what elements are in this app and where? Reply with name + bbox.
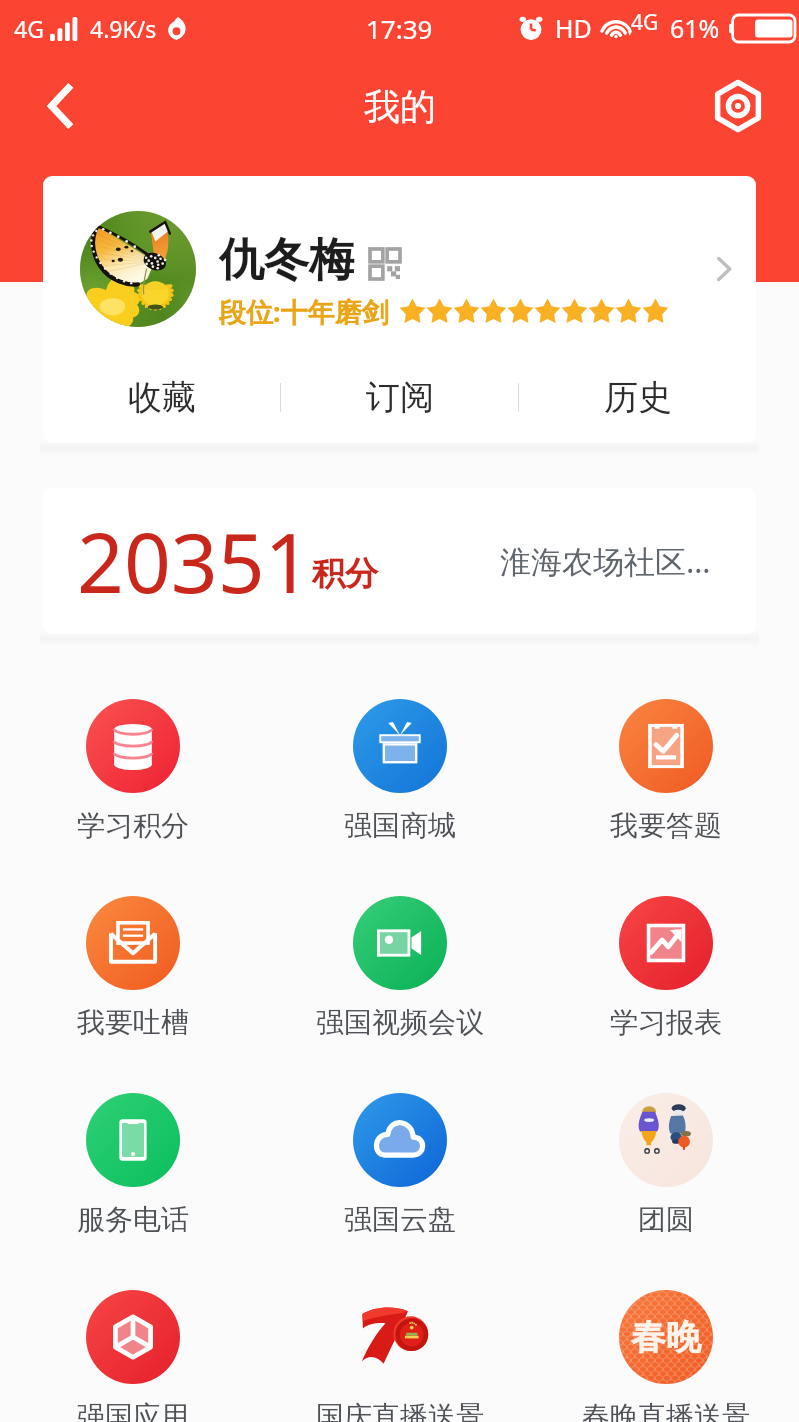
button[interactable]: 仇冬梅 [43, 176, 756, 362]
staticText: 学习积分 [77, 808, 189, 843]
staticText: 我的 [364, 84, 436, 129]
staticText: 我要吐槽 [77, 1005, 189, 1040]
staticText: 61% [670, 11, 720, 45]
staticText: 强国视频会议 [316, 1005, 484, 1040]
staticText: 春晚直播送景 [582, 1399, 750, 1422]
button[interactable]: 历史 [519, 357, 756, 438]
staticText: 收藏 [128, 376, 196, 419]
button[interactable]: 强国商城 [267, 685, 533, 843]
button[interactable]: 国庆直播送景 [267, 1276, 533, 1422]
staticText: 团圆 [638, 1202, 694, 1237]
button[interactable]: 强国云盘 [267, 1079, 533, 1237]
button[interactable]: My QR code [370, 249, 400, 279]
staticText: 淮海农场社区… [500, 540, 711, 582]
staticText: 强国应用 [77, 1399, 189, 1422]
button[interactable]: 我要吐槽 [0, 882, 266, 1040]
staticText: 4G [14, 13, 44, 44]
button[interactable]: 订阅 [281, 357, 518, 438]
staticText: 春晚 [631, 1315, 701, 1359]
staticText: 段位:十年磨剑 [219, 293, 389, 330]
button[interactable]: 收藏 [43, 357, 280, 438]
staticText: 服务电话 [77, 1202, 189, 1237]
button[interactable]: Settings [708, 76, 768, 136]
staticText: 仇冬梅 [219, 232, 354, 289]
button[interactable]: Back [32, 76, 92, 136]
staticText: 积分 [312, 553, 378, 595]
button[interactable]: 学习积分 [0, 685, 266, 843]
staticText: HD [555, 11, 592, 45]
button[interactable]: 我要答题 [533, 685, 799, 843]
button[interactable]: 春晚 [533, 1276, 799, 1422]
button[interactable]: 20351 [43, 488, 756, 634]
button[interactable]: 服务电话 [0, 1079, 266, 1237]
button[interactable]: 团圆 [533, 1079, 799, 1237]
staticText: 强国商城 [344, 808, 456, 843]
staticText: 4.9K/s [90, 13, 157, 44]
staticText: 17:39 [366, 11, 433, 46]
button[interactable]: 学习报表 [533, 882, 799, 1040]
button[interactable]: 强国应用 [0, 1276, 266, 1422]
staticText: 历史 [604, 376, 672, 419]
button[interactable]: 强国视频会议 [267, 882, 533, 1040]
staticText: 国庆直播送景 [316, 1399, 484, 1422]
staticText: 20351 [77, 505, 312, 617]
staticText: 强国云盘 [344, 1202, 456, 1237]
staticText: 我要答题 [610, 808, 722, 843]
staticText: 订阅 [366, 376, 434, 419]
staticText: 学习报表 [610, 1005, 722, 1040]
staticText: 4G [631, 8, 659, 37]
